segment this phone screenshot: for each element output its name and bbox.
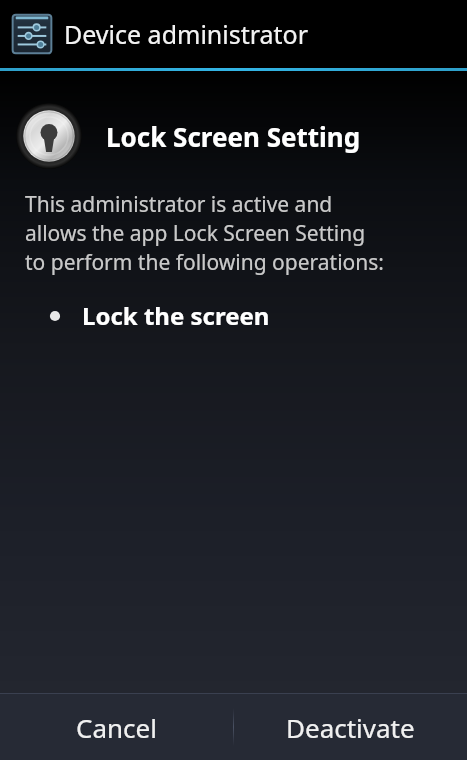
- staticText: allows the app Lock Screen Setting: [25, 219, 366, 248]
- button[interactable]: Deactivate: [234, 694, 467, 760]
- staticText: Lock Screen Setting: [106, 119, 361, 154]
- button[interactable]: Cancel: [0, 694, 233, 760]
- other: Device administrator settings: [10, 12, 54, 56]
- staticText: to perform the following operations:: [25, 248, 384, 277]
- staticText: Deactivate: [286, 710, 415, 745]
- staticText: Cancel: [76, 710, 157, 745]
- staticText: This administrator is active and: [25, 190, 333, 219]
- staticText: Lock the screen: [82, 299, 270, 332]
- staticText: Device administrator: [64, 17, 309, 51]
